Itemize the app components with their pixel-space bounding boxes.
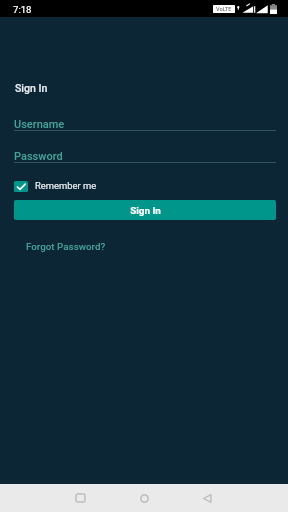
staticText: Username <box>14 118 65 131</box>
button[interactable]: Back <box>191 484 223 512</box>
button[interactable]: Password <box>14 150 276 168</box>
staticText: 7:18 <box>13 4 32 15</box>
button[interactable]: Forgot Password? <box>20 238 112 255</box>
staticText: Sign In <box>130 205 161 216</box>
button[interactable]: Sign In <box>14 200 276 220</box>
button[interactable]: Recent apps <box>64 484 96 512</box>
staticText: Password <box>14 150 63 163</box>
button[interactable]: Remember me <box>14 179 103 194</box>
staticText: Forgot Password? <box>26 241 106 252</box>
staticText: Remember me <box>35 180 97 191</box>
button[interactable]: Home <box>128 484 160 512</box>
button[interactable]: Sign In <box>14 81 49 95</box>
staticText: VoLTE <box>216 6 232 13</box>
button[interactable]: Username <box>14 118 276 136</box>
staticText: Sign In <box>15 82 48 94</box>
